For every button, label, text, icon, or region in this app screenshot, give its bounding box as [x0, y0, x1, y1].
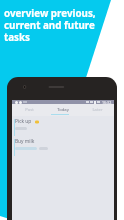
staticText: Later: [92, 107, 103, 113]
staticText: Buy milk: [15, 138, 35, 145]
staticText: Today: [57, 107, 69, 113]
staticText: overview previous, current and future ta…: [4, 7, 96, 44]
button[interactable]: Today: [46, 104, 80, 116]
button[interactable]: Past: [12, 104, 46, 116]
button[interactable]: Later: [80, 104, 114, 116]
staticText: 16:32: [102, 100, 112, 104]
button[interactable]: Pick up: [12, 119, 114, 136]
button[interactable]: Buy milk: [12, 139, 114, 156]
staticText: Pick up: [15, 118, 32, 125]
staticText: Past: [25, 107, 34, 113]
